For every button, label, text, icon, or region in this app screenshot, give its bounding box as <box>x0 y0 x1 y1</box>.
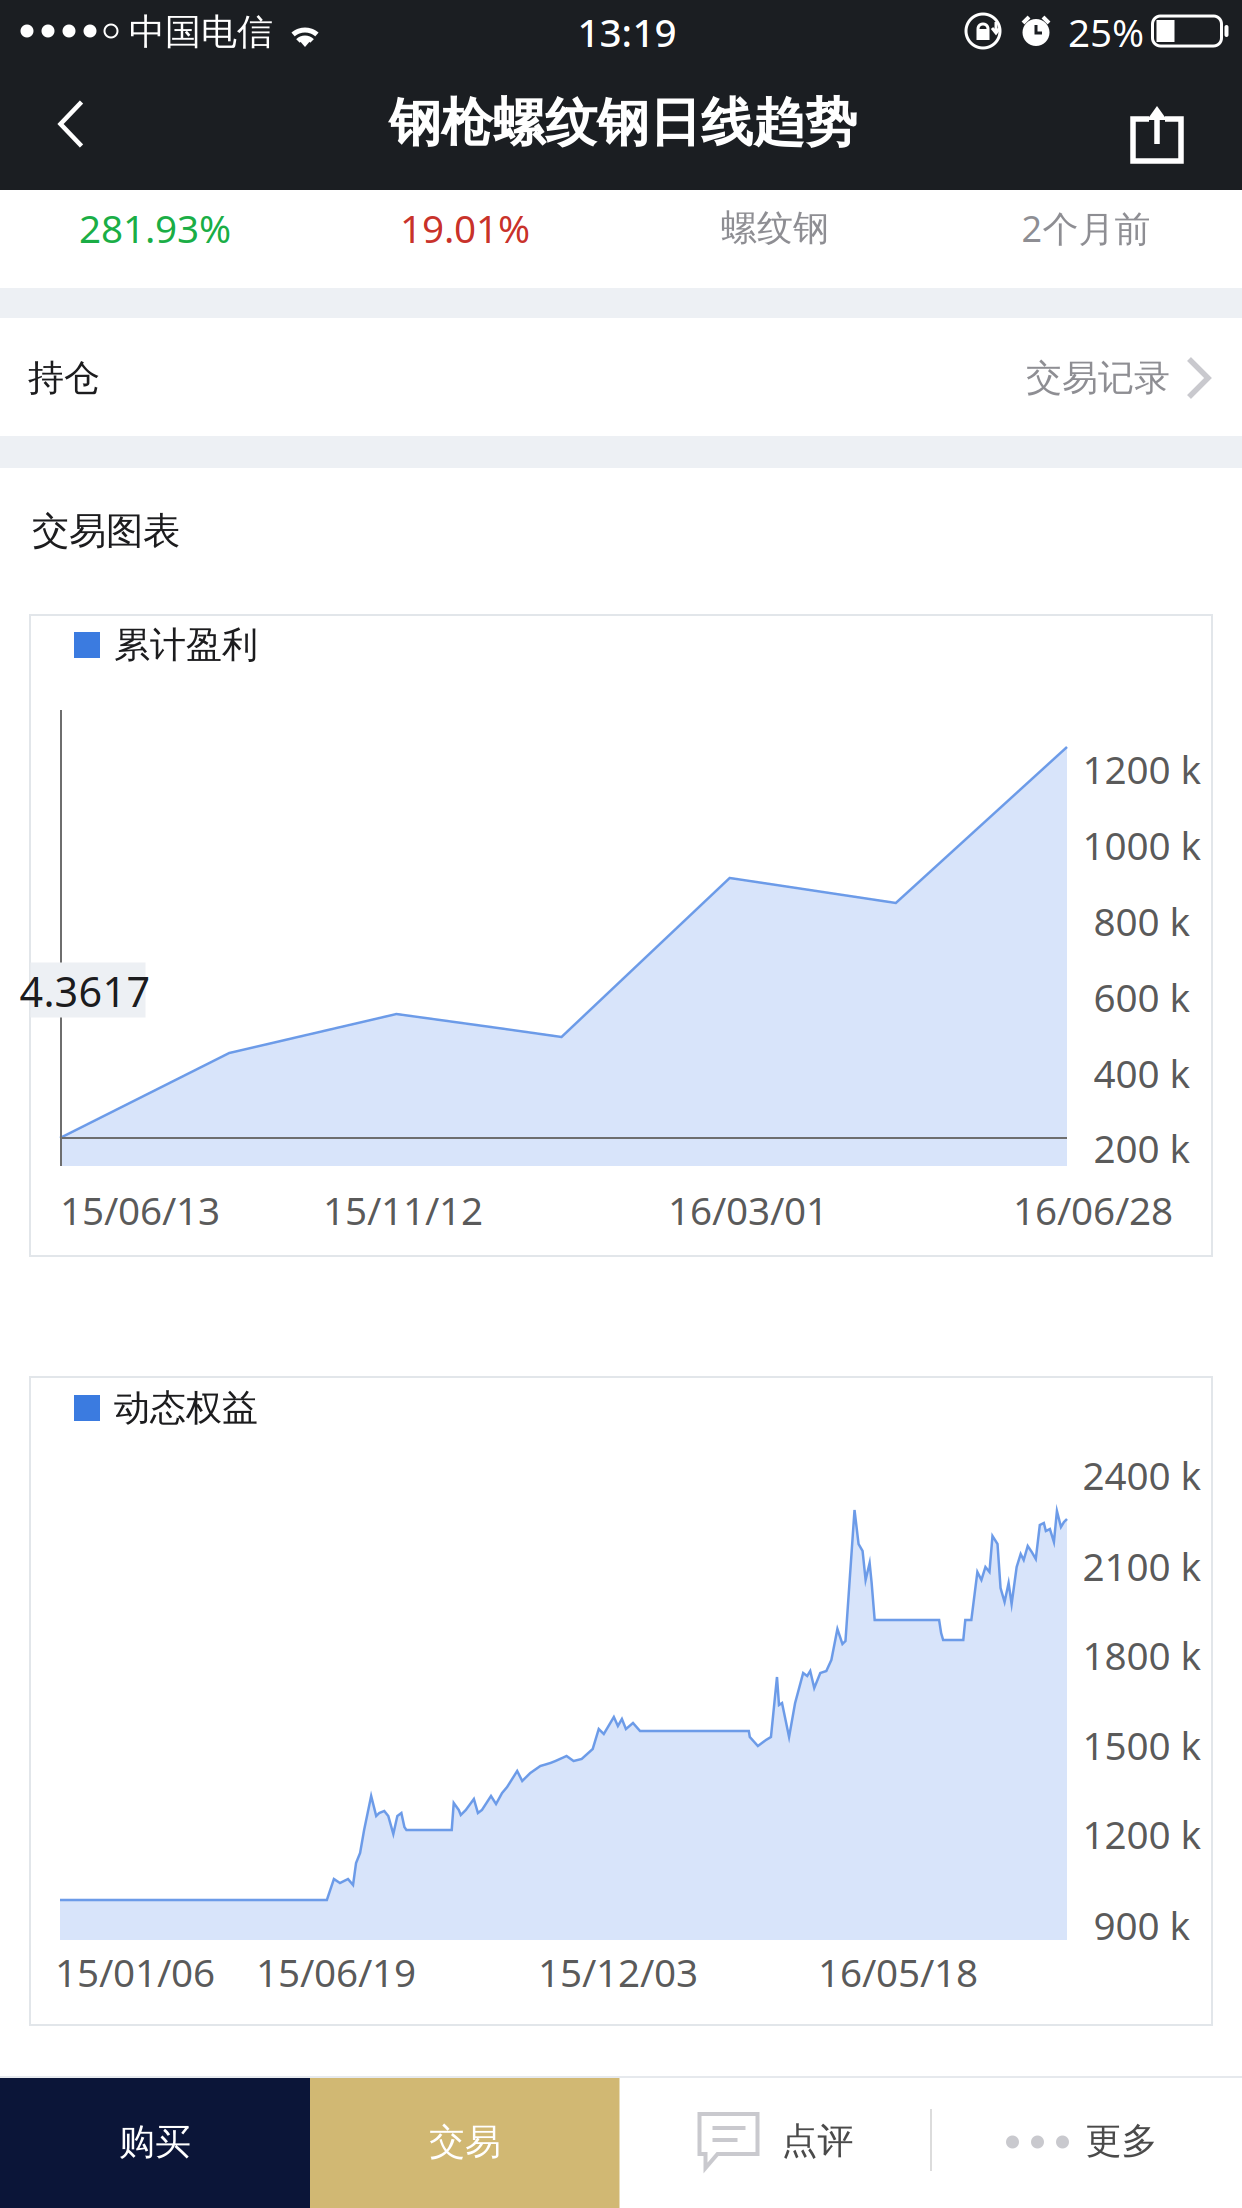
staticText: 13:19 <box>577 6 676 58</box>
staticText: 1200 k <box>1082 743 1201 795</box>
staticText: 800 k <box>1093 895 1190 947</box>
staticText: 持仓 <box>28 356 100 400</box>
staticText: 281.93% <box>79 202 231 254</box>
staticText: 1000 k <box>1082 819 1201 871</box>
staticText: 15/06/19 <box>256 1946 416 1998</box>
staticText: 2400 k <box>1082 1449 1201 1501</box>
staticText: 400 k <box>1093 1047 1190 1099</box>
button[interactable]: 交易 <box>310 2076 620 2208</box>
staticText: 25% <box>1068 6 1144 58</box>
staticText: 4.3617 <box>19 964 150 1018</box>
staticText: 16/05/18 <box>818 1946 978 1998</box>
staticText: 钢枪螺纹钢日线趋势 <box>389 91 857 155</box>
button[interactable]: 持仓 <box>0 318 1242 436</box>
staticText: 1800 k <box>1082 1629 1201 1681</box>
staticText: 15/01/06 <box>55 1946 215 1998</box>
staticText: 点评 <box>781 2119 853 2163</box>
staticText: 15/06/13 <box>60 1184 220 1236</box>
button[interactable]: 更多 <box>930 2076 1241 2208</box>
button[interactable]: 购买 <box>0 2076 310 2208</box>
staticText: 1200 k <box>1082 1808 1201 1860</box>
staticText: 交易图表 <box>32 508 180 554</box>
staticText: 中国电信 <box>129 10 273 54</box>
staticText: 交易 <box>429 2120 501 2164</box>
staticText: 19.01% <box>400 202 530 254</box>
button[interactable]: Back <box>1 67 141 181</box>
staticText: 螺纹钢 <box>721 206 829 250</box>
staticText: 2100 k <box>1082 1540 1201 1592</box>
button[interactable]: Share <box>1087 69 1227 183</box>
staticText: 15/11/12 <box>323 1184 483 1236</box>
staticText: 15/12/03 <box>538 1946 698 1998</box>
staticText: 1500 k <box>1082 1719 1201 1771</box>
staticText: 600 k <box>1093 971 1190 1023</box>
staticText: 16/03/01 <box>668 1184 828 1236</box>
staticText: 更多 <box>1085 2119 1157 2163</box>
staticText: 交易记录 <box>1026 356 1170 400</box>
staticText: 16/06/28 <box>1013 1184 1173 1236</box>
staticText: 200 k <box>1093 1122 1190 1174</box>
staticText: 动态权益 <box>114 1386 258 1430</box>
staticText: 购买 <box>119 2120 191 2164</box>
staticText: 2个月前 <box>1021 204 1150 252</box>
staticText: 900 k <box>1093 1899 1190 1951</box>
button[interactable]: 点评 <box>619 2076 930 2208</box>
staticText: 累计盈利 <box>114 623 258 667</box>
